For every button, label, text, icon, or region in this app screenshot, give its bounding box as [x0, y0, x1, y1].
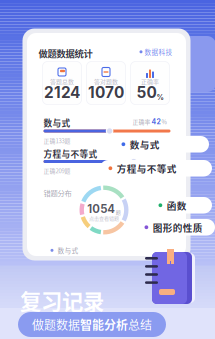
staticText: 1070: [88, 83, 124, 102]
staticText: 方程与不等式: [43, 147, 97, 160]
staticText: 函数: [167, 198, 187, 212]
staticText: 复习记录: [20, 285, 104, 316]
staticText: 做题数据: [32, 316, 80, 333]
staticText: 数与式: [57, 245, 78, 255]
button[interactable]: 做题数据: [18, 312, 166, 337]
staticText: 答对题数: [94, 77, 118, 86]
staticText: 数与式: [130, 137, 160, 151]
staticText: 答题总数: [50, 77, 74, 86]
button[interactable]: 函数: [150, 197, 212, 213]
staticText: 正确率: [141, 77, 159, 86]
staticText: %: [156, 93, 163, 102]
staticText: 方程与不等式: [117, 161, 177, 175]
staticText: 图形的性质: [153, 220, 203, 234]
staticText: 正确133题: [43, 136, 70, 145]
staticText: 数据科技: [144, 47, 172, 57]
staticText: %: [160, 117, 166, 126]
staticText: 错题分布: [43, 187, 71, 198]
staticText: 正确209题: [43, 166, 70, 175]
staticText: 做题数据统计: [38, 46, 92, 60]
staticText: 题: [116, 208, 121, 216]
button[interactable]: 方程与不等式: [100, 160, 212, 176]
staticText: 50: [136, 83, 156, 102]
staticText: 2124: [44, 83, 80, 102]
staticText: 42: [151, 118, 160, 126]
button[interactable]: 图形的性质: [136, 219, 215, 235]
staticText: 总结: [128, 316, 152, 333]
staticText: 正确率: [132, 117, 151, 126]
staticText: 智能分析: [80, 316, 128, 333]
button[interactable]: 数与式: [113, 136, 209, 152]
staticText: 1054: [87, 202, 115, 216]
staticText: 点击查看错题: [89, 214, 119, 222]
staticText: 数与式: [43, 116, 70, 129]
